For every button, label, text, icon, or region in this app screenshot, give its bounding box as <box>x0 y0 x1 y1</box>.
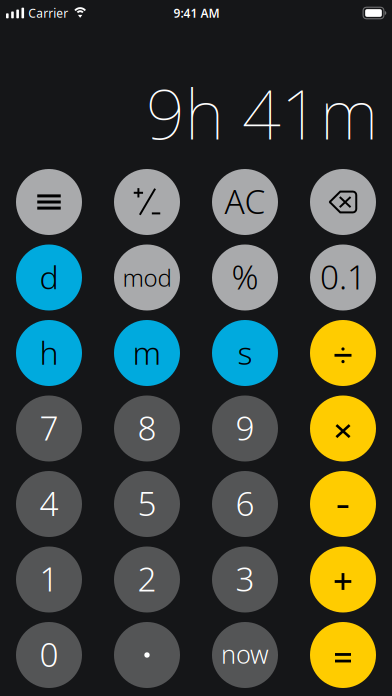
staticText: 9 <box>235 405 254 450</box>
button[interactable]: % <box>212 244 278 310</box>
staticText: 5 <box>137 481 156 525</box>
button[interactable]: 6 <box>212 471 278 537</box>
button[interactable]: Menu <box>16 169 82 235</box>
button[interactable]: 8 <box>114 395 180 461</box>
button[interactable]: 4 <box>16 471 82 537</box>
staticText: 0 <box>39 632 58 676</box>
button[interactable]: d <box>16 244 82 310</box>
button[interactable]: 2 <box>114 546 180 612</box>
button[interactable]: m <box>114 320 180 386</box>
staticText: 4 <box>39 481 58 525</box>
staticText: d <box>39 256 58 298</box>
staticText: m <box>132 331 161 374</box>
button[interactable]: Add <box>310 546 376 612</box>
button[interactable]: 1 <box>16 546 82 612</box>
staticText: 3 <box>235 556 254 601</box>
button[interactable]: 0 <box>16 622 82 688</box>
staticText: 8 <box>137 405 156 450</box>
staticText: 0.1 <box>320 254 366 299</box>
staticText: now <box>221 637 269 671</box>
button[interactable]: mod <box>114 244 180 310</box>
button[interactable]: Decimal point <box>114 622 180 688</box>
button[interactable]: Equals <box>310 622 376 688</box>
button[interactable]: 9 <box>212 395 278 461</box>
staticText: 7 <box>39 405 58 450</box>
staticText: AC <box>224 179 265 223</box>
staticText: 9:41 AM <box>173 5 219 21</box>
button[interactable]: s <box>212 320 278 386</box>
button[interactable]: h <box>16 320 82 386</box>
button[interactable]: AC <box>212 169 278 235</box>
button[interactable]: Divide <box>310 320 376 386</box>
button[interactable]: 0.1 <box>310 244 376 310</box>
button[interactable]: 7 <box>16 395 82 461</box>
button[interactable]: now <box>212 622 278 688</box>
staticText: Carrier <box>28 5 68 21</box>
button[interactable]: Multiply <box>310 395 376 461</box>
button[interactable]: 3 <box>212 546 278 612</box>
staticText: s <box>237 331 252 374</box>
staticText: mod <box>122 262 171 293</box>
button[interactable]: Subtract <box>310 471 376 537</box>
button[interactable]: Delete <box>310 169 376 235</box>
staticText: h <box>39 331 58 374</box>
staticText: 9h 41m <box>146 68 378 158</box>
staticText: 1 <box>39 556 58 601</box>
staticText: 6 <box>235 481 254 525</box>
button[interactable]: 5 <box>114 471 180 537</box>
staticText: 2 <box>137 556 156 601</box>
button[interactable]: Toggle sign <box>114 169 180 235</box>
staticText: % <box>231 254 258 299</box>
